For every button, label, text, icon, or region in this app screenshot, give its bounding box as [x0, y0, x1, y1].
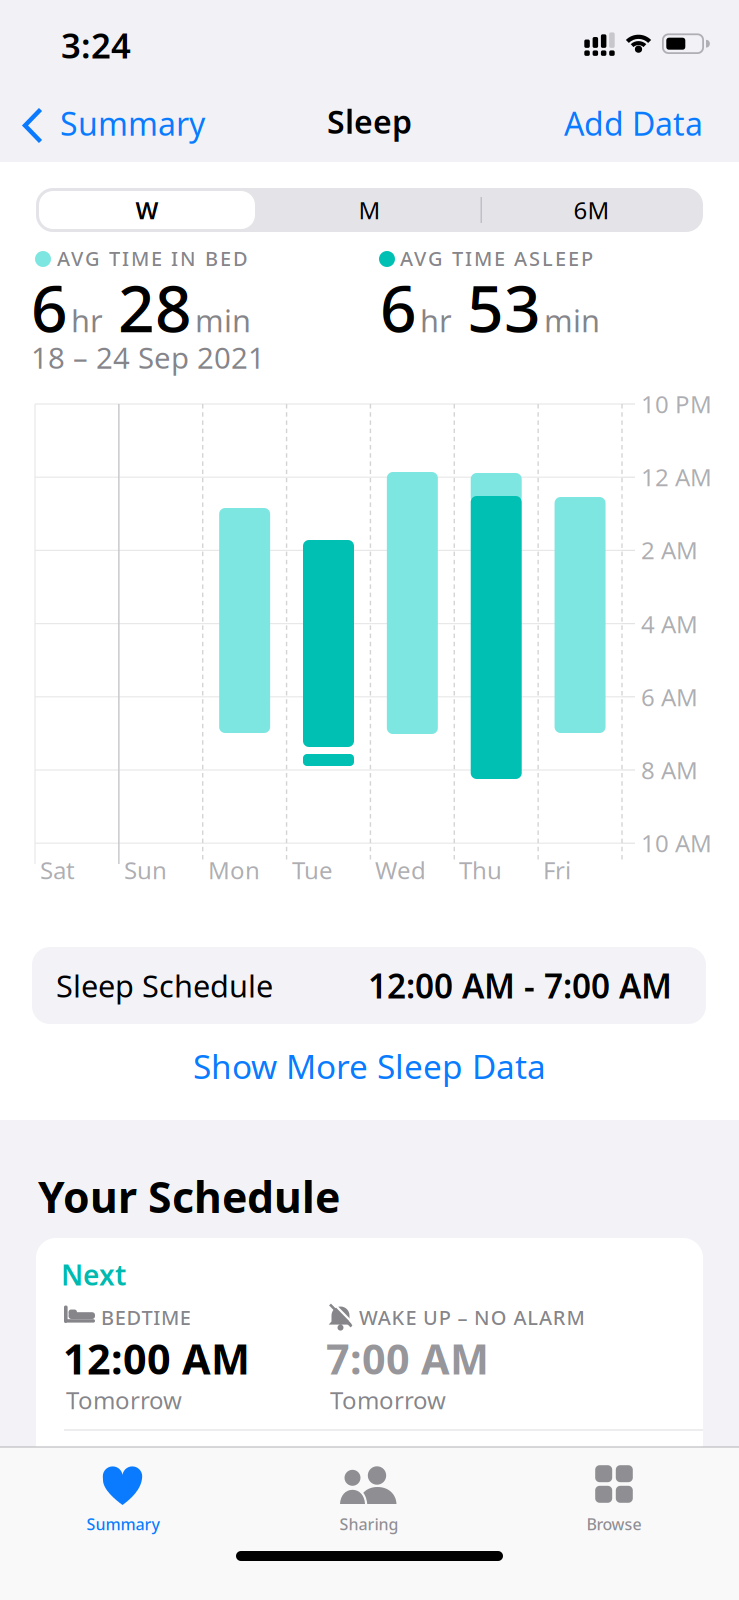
staticText: Wed — [375, 854, 426, 886]
button[interactable]: M — [260, 191, 479, 229]
staticText: Fri — [543, 854, 571, 886]
staticText: 18 – 24 Sep 2021 — [31, 338, 265, 377]
staticText: BEDTIME — [101, 1304, 191, 1331]
button[interactable]: W — [39, 191, 255, 229]
staticText: 10 PM — [641, 388, 712, 420]
staticText: 6 — [380, 265, 417, 350]
staticText: Tomorrow — [66, 1384, 182, 1416]
staticText: AVG TIME ASLEEP — [400, 245, 593, 272]
staticText: 3:24 — [61, 22, 131, 68]
button[interactable]: Browse — [524, 1458, 704, 1534]
staticText: WAKE UP – NO ALARM — [359, 1304, 585, 1331]
button[interactable]: Back — [20, 102, 205, 150]
staticText: 12 AM — [641, 461, 712, 493]
staticText: Mon — [208, 854, 260, 886]
staticText: hr — [71, 300, 103, 341]
staticText: Next — [61, 1256, 126, 1293]
staticText: Add Data — [564, 102, 703, 144]
staticText: 8 AM — [641, 754, 698, 786]
staticText: 28 — [118, 265, 192, 350]
staticText: 12:00 AM - 7:00 AM — [368, 963, 672, 1008]
button[interactable]: Sharing — [279, 1458, 459, 1534]
staticText: Summary — [86, 1513, 159, 1535]
staticText: 53 — [467, 265, 541, 350]
staticText: Summary — [60, 102, 205, 144]
staticText: W — [135, 194, 158, 226]
staticText: 12:00 AM — [63, 1331, 250, 1386]
staticText: Sleep — [327, 100, 412, 142]
staticText: Browse — [586, 1513, 641, 1535]
staticText: 2 AM — [641, 534, 698, 566]
staticText: Your Schedule — [38, 1168, 340, 1225]
staticText: 7:00 AM — [326, 1331, 489, 1386]
staticText: min — [544, 300, 600, 341]
staticText: Tomorrow — [330, 1384, 446, 1416]
staticText: Sleep Schedule — [56, 965, 273, 1006]
button[interactable]: Summary — [33, 1458, 213, 1534]
staticText: Show More Sleep Data — [193, 1044, 546, 1088]
staticText: min — [195, 300, 251, 341]
button[interactable]: Add Data — [564, 102, 703, 144]
staticText: 6M — [573, 194, 609, 226]
button[interactable]: Sleep Schedule — [32, 947, 706, 1024]
staticText: Sun — [124, 854, 167, 886]
button[interactable]: 6M — [482, 191, 701, 229]
staticText: Sat — [40, 854, 75, 886]
staticText: Tue — [292, 854, 333, 886]
staticText: hr — [420, 300, 452, 341]
staticText: Thu — [459, 854, 502, 886]
button[interactable]: Show More Sleep Data — [193, 1044, 546, 1088]
staticText: M — [358, 194, 380, 226]
staticText: 4 AM — [641, 608, 698, 640]
staticText: 6 — [31, 265, 68, 350]
staticText: AVG TIME IN BED — [57, 245, 248, 272]
staticText: 6 AM — [641, 681, 698, 713]
staticText: Sharing — [339, 1513, 398, 1535]
staticText: 10 AM — [641, 827, 712, 859]
